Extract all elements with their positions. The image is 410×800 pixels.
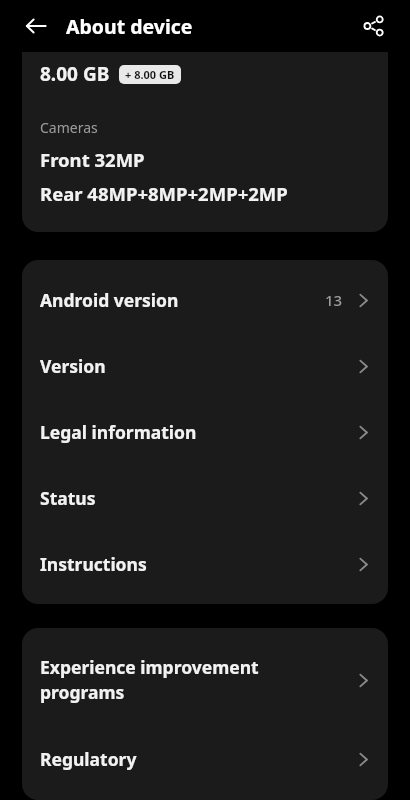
staticText: Status bbox=[40, 486, 353, 510]
staticText: Android version bbox=[40, 288, 325, 312]
staticText: Rear 48MP+8MP+2MP+2MP bbox=[40, 181, 288, 206]
button[interactable]: Regulatory bbox=[22, 725, 388, 793]
button[interactable]: Share bbox=[352, 4, 396, 48]
staticText: Front 32MP bbox=[40, 147, 145, 172]
staticText: Instructions bbox=[40, 552, 353, 576]
button[interactable]: Status bbox=[22, 465, 388, 531]
staticText: Cameras bbox=[40, 118, 98, 137]
button[interactable]: Legal information bbox=[22, 399, 388, 465]
staticText: Experience improvement programs bbox=[40, 655, 353, 705]
staticText: Version bbox=[40, 354, 353, 378]
button[interactable]: Android version bbox=[22, 267, 388, 333]
button[interactable]: Version bbox=[22, 333, 388, 399]
staticText: About device bbox=[66, 13, 193, 40]
staticText: Legal information bbox=[40, 420, 353, 444]
button[interactable]: Experience improvement programs bbox=[22, 635, 388, 725]
button[interactable]: Instructions bbox=[22, 531, 388, 597]
staticText: 13 bbox=[325, 290, 343, 310]
button[interactable]: Back bbox=[14, 4, 58, 48]
staticText: + 8.00 GB bbox=[125, 67, 175, 82]
staticText: Regulatory bbox=[40, 747, 353, 771]
staticText: 8.00 GB bbox=[40, 61, 110, 87]
